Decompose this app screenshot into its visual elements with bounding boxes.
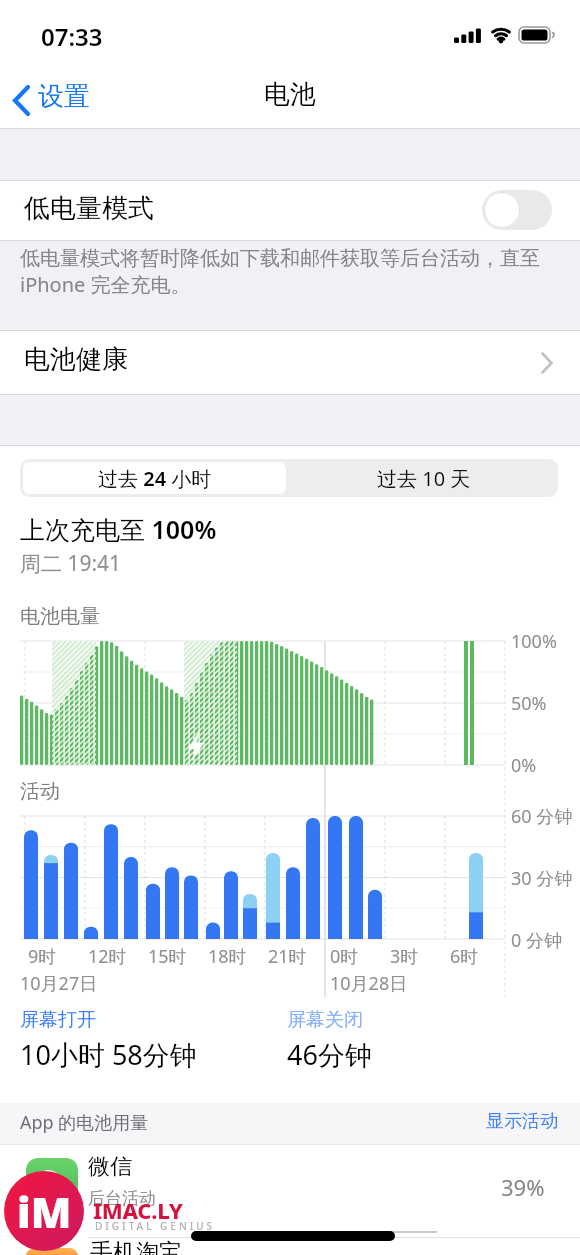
staticText: 46分钟 — [287, 1036, 372, 1073]
staticText: DIGITAL GENIUS — [95, 1219, 216, 1233]
staticText: 50% — [511, 691, 547, 716]
button[interactable]: 微信 — [0, 1145, 580, 1237]
button[interactable]: 过去 10 天 — [289, 459, 558, 497]
staticText: 手机淘宝 — [90, 1238, 182, 1255]
staticText: 9时 — [28, 944, 57, 969]
staticText: IMAC.LY — [93, 1195, 183, 1225]
button[interactable]: 低电量模式 — [0, 181, 580, 240]
staticText: 07:33 — [41, 20, 103, 53]
staticText: 电池电量 — [20, 604, 100, 629]
staticText: 活动 — [20, 779, 60, 804]
staticText: 上次充电至 100% — [20, 512, 217, 546]
button[interactable]: 显示活动 — [380, 1110, 558, 1133]
staticText: 低电量模式将暂时降低如下载和邮件获取等后台活动，直至 iPhone 完全充电。 — [20, 246, 540, 298]
staticText: 10小时 58分钟 — [20, 1036, 197, 1073]
staticText: 10月28日 — [330, 971, 408, 996]
staticText: iM — [17, 1183, 72, 1240]
staticText: 显示活动 — [486, 1110, 558, 1133]
staticText: 过去 24 小时 — [98, 465, 212, 492]
staticText: 6时 — [450, 944, 479, 969]
staticText: 电池健康 — [24, 343, 128, 376]
staticText: 18时 — [208, 944, 247, 969]
staticText: 周二 19:41 — [20, 549, 122, 578]
staticText: 39% — [501, 1172, 545, 1202]
button[interactable]: 设置 — [8, 80, 118, 120]
staticText: 15时 — [148, 944, 187, 969]
staticText: 后台活动 — [88, 1188, 156, 1209]
staticText: 10月27日 — [20, 971, 98, 996]
button[interactable]: 手机淘宝 — [0, 1238, 580, 1255]
staticText: 屏幕打开 — [20, 1008, 96, 1032]
staticText: 设置 — [38, 80, 90, 113]
staticText: 3时 — [390, 944, 419, 969]
staticText: 电池 — [264, 78, 316, 111]
button[interactable]: 过去 24 小时 — [20, 459, 289, 497]
staticText: 21时 — [268, 944, 307, 969]
staticText: 屏幕关闭 — [287, 1008, 363, 1032]
staticText: 低电量模式 — [24, 192, 154, 225]
staticText: 60 分钟 — [511, 804, 573, 829]
staticText: 0% — [511, 753, 537, 778]
staticText: 微信 — [88, 1153, 132, 1181]
staticText: 过去 10 天 — [377, 465, 471, 492]
staticText: 12时 — [88, 944, 127, 969]
staticText: 100% — [511, 629, 557, 654]
staticText: App 的电池用量 — [20, 1110, 149, 1135]
staticText: 0 分钟 — [511, 928, 562, 953]
staticText: 30 分钟 — [511, 866, 573, 891]
staticText: 0时 — [330, 944, 359, 969]
button[interactable]: 电池健康 — [0, 331, 580, 394]
